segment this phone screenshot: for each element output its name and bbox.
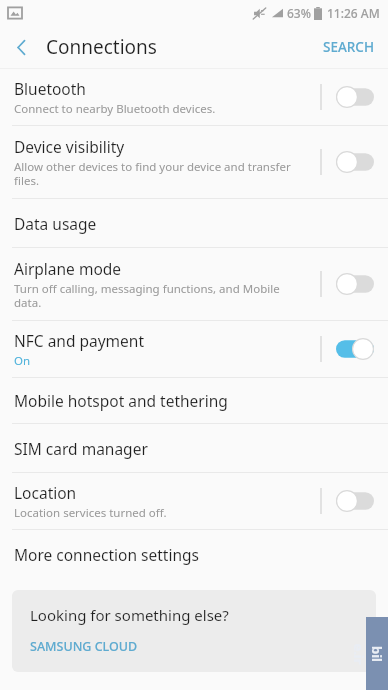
button[interactable]: More connection settings: [0, 530, 388, 578]
staticText: Allow other devices to find your device …: [14, 159, 291, 188]
staticText: Bluetooth: [14, 78, 86, 99]
staticText: Location services turned off.: [14, 505, 167, 521]
staticText: mobile.ir: [350, 643, 388, 665]
button[interactable]: Data usage: [0, 199, 388, 247]
staticText: On: [14, 353, 31, 369]
button[interactable]: Airplane mode switch: [322, 248, 388, 320]
staticText: More connection settings: [14, 544, 199, 565]
staticText: Looking for something else?: [30, 605, 229, 625]
staticText: SEARCH: [323, 38, 374, 56]
staticText: Location: [14, 482, 77, 503]
button[interactable]: Device visibility: [0, 126, 388, 198]
staticText: SIM card manager: [14, 438, 148, 459]
staticText: Turn off calling, messaging functions, a…: [14, 281, 280, 310]
staticText: NFC and payment: [14, 330, 145, 351]
button[interactable]: Bluetooth: [0, 69, 388, 125]
button[interactable]: NFC and payment switch: [322, 321, 388, 377]
button[interactable]: Mobile hotspot and tethering: [0, 378, 388, 423]
button[interactable]: Device visibility switch: [322, 126, 388, 198]
staticText: SAMSUNG CLOUD: [30, 638, 138, 655]
button[interactable]: Airplane mode: [0, 248, 388, 320]
staticText: Connections: [46, 34, 157, 60]
button[interactable]: Location: [0, 473, 388, 529]
button[interactable]: Location switch: [322, 473, 388, 529]
button[interactable]: Bluetooth switch: [322, 69, 388, 125]
button[interactable]: SIM card manager: [0, 424, 388, 472]
staticText: 11:26 AM: [327, 5, 380, 21]
staticText: Airplane mode: [14, 258, 122, 279]
staticText: Device visibility: [14, 136, 125, 157]
staticText: Mobile hotspot and tethering: [14, 390, 228, 411]
staticText: 63%: [287, 5, 311, 21]
button[interactable]: SEARCH: [309, 26, 388, 68]
button[interactable]: Back: [0, 26, 42, 68]
staticText: Data usage: [14, 213, 97, 234]
button[interactable]: Looking for something else?: [12, 590, 376, 672]
button[interactable]: NFC and payment: [0, 321, 388, 377]
staticText: Connect to nearby Bluetooth devices.: [14, 101, 216, 117]
